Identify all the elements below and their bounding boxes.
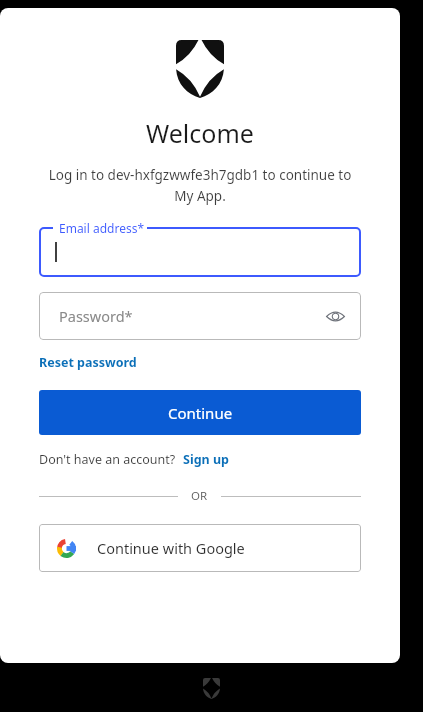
button[interactable]: Continue with Google — [39, 524, 361, 572]
button[interactable]: Password* — [39, 292, 361, 340]
button[interactable]: Continue — [39, 390, 361, 435]
button[interactable]: Sign up — [183, 451, 229, 468]
staticText: Continue with Google — [97, 538, 245, 558]
staticText: Welcome — [146, 116, 254, 150]
button[interactable]: Reset password — [39, 354, 137, 371]
staticText: Reset password — [39, 354, 137, 371]
staticText: Email address* — [59, 220, 145, 236]
button[interactable]: Show password — [323, 304, 347, 328]
staticText: OR — [191, 488, 208, 504]
staticText: Don't have an account? — [39, 451, 176, 468]
staticText: Log in to dev-hxfgzwwfe3h7gdb1 to contin… — [38, 166, 362, 205]
staticText: Continue — [168, 403, 233, 423]
staticText: Password* — [59, 306, 133, 326]
staticText: Sign up — [183, 451, 229, 468]
button[interactable]: Email address* — [39, 227, 361, 277]
